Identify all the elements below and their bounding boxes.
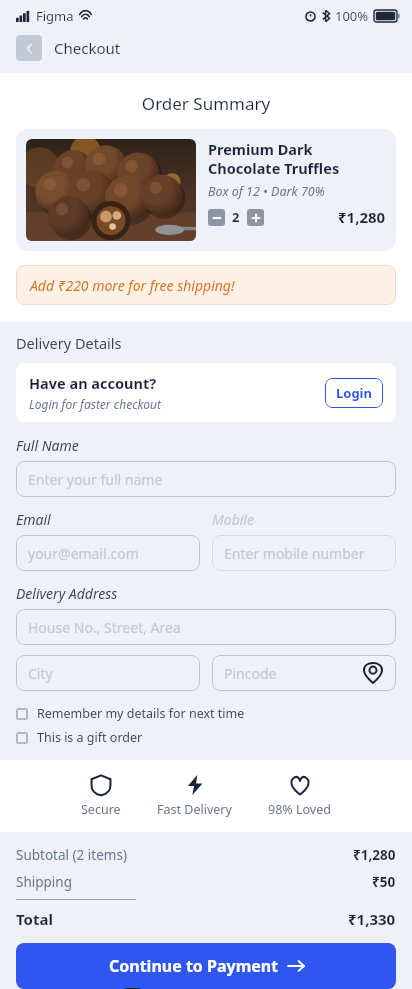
staticText: Checkout bbox=[54, 38, 121, 58]
button[interactable]: Increase quantity bbox=[247, 209, 264, 226]
staticText: Total bbox=[16, 909, 53, 929]
button[interactable]: Premium Dark Chocolate Truffles bbox=[26, 139, 386, 241]
staticText: ₹1,280 bbox=[353, 846, 396, 864]
staticText: Add ₹220 more for free shipping! bbox=[30, 276, 235, 295]
staticText: 2 bbox=[232, 208, 240, 226]
staticText: Enter your full name bbox=[28, 470, 163, 489]
button[interactable]: Enter your full name bbox=[16, 461, 396, 497]
staticText: Pincode bbox=[224, 664, 277, 683]
button[interactable]: Secure bbox=[77, 774, 125, 818]
staticText: Secure bbox=[81, 801, 121, 818]
button[interactable]: your@email.com bbox=[16, 535, 200, 571]
button[interactable]: House No., Street, Area bbox=[16, 609, 396, 645]
staticText: your@email.com bbox=[28, 544, 139, 563]
staticText: Email bbox=[16, 510, 51, 529]
staticText: Fast Delivery bbox=[157, 801, 232, 818]
staticText: Login bbox=[336, 384, 372, 402]
button[interactable]: Detect location bbox=[360, 660, 386, 686]
button[interactable]: Enter mobile number bbox=[212, 535, 396, 571]
button[interactable]: City bbox=[16, 655, 200, 691]
staticText: Full Name bbox=[16, 436, 79, 455]
staticText: Mobile bbox=[212, 510, 254, 529]
staticText: Have an account? bbox=[29, 373, 157, 393]
staticText: 98% Loved bbox=[268, 801, 331, 818]
staticText: Shipping bbox=[16, 873, 72, 891]
staticText: Remember my details for next time bbox=[37, 705, 245, 722]
button[interactable]: Fast Delivery bbox=[153, 774, 236, 818]
staticText: Subtotal (2 items) bbox=[16, 846, 127, 864]
staticText: ₹1,280 bbox=[338, 207, 386, 227]
button[interactable]: 98% Loved bbox=[264, 774, 335, 818]
staticText: Login for faster checkout bbox=[29, 396, 161, 412]
staticText: City bbox=[28, 664, 53, 683]
staticText: Figma bbox=[36, 7, 74, 25]
staticText: Box of 12 • Dark 70% bbox=[208, 183, 325, 200]
button[interactable]: Back bbox=[16, 35, 42, 61]
staticText: Delivery Details bbox=[16, 333, 122, 353]
staticText: Delivery Address bbox=[16, 584, 118, 603]
staticText: ₹1,330 bbox=[348, 909, 396, 929]
staticText: Enter mobile number bbox=[224, 544, 365, 563]
staticText: Order Summary bbox=[0, 92, 412, 115]
button[interactable]: Remember my details for next time bbox=[0, 703, 412, 724]
button[interactable]: Login bbox=[325, 378, 383, 408]
staticText: 100% bbox=[335, 7, 369, 25]
button[interactable]: Continue to Payment bbox=[16, 943, 396, 989]
staticText: ₹50 bbox=[372, 873, 396, 891]
staticText: This is a gift order bbox=[37, 729, 143, 746]
button[interactable]: This is a gift order bbox=[0, 727, 412, 748]
staticText: Premium Dark Chocolate Truffles bbox=[208, 139, 386, 178]
button[interactable]: Decrease quantity bbox=[208, 209, 225, 226]
staticText: House No., Street, Area bbox=[28, 618, 181, 637]
button[interactable]: Pincode bbox=[212, 655, 396, 691]
staticText: Continue to Payment bbox=[109, 955, 279, 977]
